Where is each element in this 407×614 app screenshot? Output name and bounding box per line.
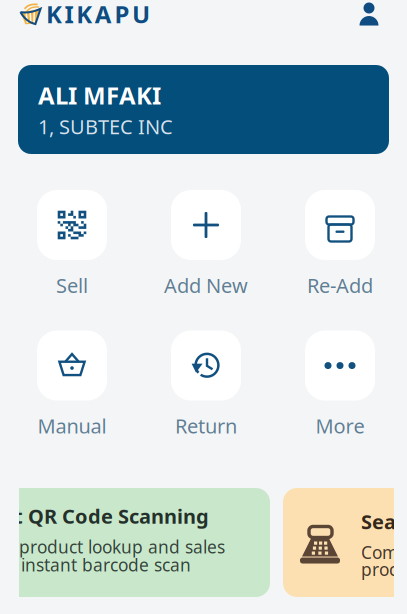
staticText: Complete payment processing <box>361 541 407 581</box>
button[interactable]: Fast QR Code Scanning <box>0 488 270 597</box>
staticText: Manual <box>37 413 106 439</box>
button[interactable]: More <box>285 331 395 439</box>
staticText: Sell <box>56 272 88 299</box>
staticText: ALI MFAKI <box>38 79 161 111</box>
staticText: 1, SUBTEC INC <box>38 113 173 140</box>
staticText: Re-Add <box>307 272 373 299</box>
button[interactable]: Re-Add <box>285 190 395 299</box>
button[interactable]: Search Products <box>283 488 407 597</box>
staticText: KIKAPU <box>46 0 150 30</box>
staticText: Fast product lookup and sales with insta… <box>0 535 225 576</box>
button[interactable]: Sell <box>17 190 127 299</box>
button[interactable]: Manual <box>17 331 127 439</box>
staticText: Add New <box>164 272 248 299</box>
button[interactable]: Add New <box>151 190 261 299</box>
staticText: Return <box>175 413 237 439</box>
button[interactable]: Account <box>358 8 380 31</box>
staticText: Fast QR Code Scanning <box>0 503 209 529</box>
staticText: More <box>315 413 364 439</box>
button[interactable]: Return <box>151 331 261 439</box>
staticText: Search Products <box>361 508 407 535</box>
